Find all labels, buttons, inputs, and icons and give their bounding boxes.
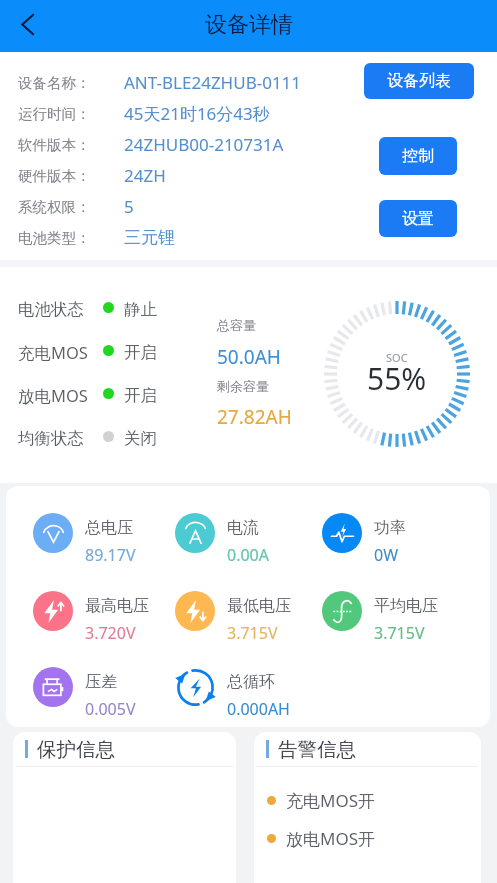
staticText: 总容量 — [217, 317, 256, 333]
button[interactable]: 设置 — [379, 200, 457, 237]
staticText: 总电压 — [85, 518, 133, 538]
staticText: 充电MOS开 — [286, 789, 376, 812]
staticText: 压差 — [85, 672, 117, 692]
button[interactable]: Back — [8, 5, 46, 43]
button[interactable]: 总电压 — [33, 513, 136, 561]
staticText: 告警信息 — [278, 737, 356, 762]
staticText: 控制 — [402, 146, 434, 166]
staticText: 电流 — [227, 518, 259, 538]
staticText: 最高电压 — [85, 596, 149, 616]
button[interactable]: 功率 — [322, 513, 406, 561]
button[interactable]: 设备列表 — [364, 63, 474, 99]
staticText: 放电MOS — [18, 384, 88, 407]
staticText: ANT-BLE24ZHUB-0111 — [124, 71, 302, 94]
staticText: 3.715V — [227, 622, 278, 644]
staticText: 充电MOS — [18, 341, 88, 364]
staticText: 软件版本： — [18, 136, 91, 154]
staticText: 0.000AH — [227, 698, 290, 720]
staticText: 89.17V — [85, 544, 136, 566]
staticText: 开启 — [124, 385, 157, 406]
button[interactable]: 控制 — [379, 137, 457, 175]
staticText: 0.00A — [227, 544, 269, 566]
staticText: 设备列表 — [387, 71, 451, 91]
staticText: 电池状态 — [18, 299, 84, 320]
staticText: 0.005V — [85, 698, 136, 720]
staticText: 50.0AH — [217, 344, 281, 370]
staticText: 总循环 — [227, 672, 275, 692]
button[interactable]: 总循环 — [175, 667, 290, 715]
staticText: 剩余容量 — [217, 378, 269, 394]
staticText: 放电MOS开 — [286, 827, 376, 850]
staticText: 24ZH — [124, 164, 166, 187]
staticText: SOC — [386, 350, 408, 365]
staticText: 均衡状态 — [18, 428, 84, 449]
staticText: 3.715V — [374, 622, 425, 644]
staticText: 最低电压 — [227, 596, 291, 616]
staticText: 三元锂 — [124, 227, 175, 248]
staticText: 保护信息 — [37, 737, 115, 762]
staticText: 设置 — [402, 209, 434, 229]
button[interactable]: 最低电压 — [175, 591, 291, 639]
staticText: 功率 — [374, 518, 406, 538]
staticText: 硬件版本： — [18, 167, 91, 185]
staticText: 运行时间： — [18, 105, 91, 123]
button[interactable]: 平均电压 — [322, 591, 438, 639]
staticText: 55% — [367, 358, 427, 399]
staticText: 静止 — [124, 299, 157, 320]
button[interactable]: 电流 — [175, 513, 269, 561]
staticText: 平均电压 — [374, 596, 438, 616]
staticText: 关闭 — [124, 428, 157, 449]
staticText: 设备名称： — [18, 74, 91, 92]
staticText: 0W — [374, 544, 399, 566]
button[interactable]: 最高电压 — [33, 591, 149, 639]
staticText: 3.720V — [85, 622, 136, 644]
staticText: 系统权限： — [18, 198, 91, 216]
staticText: 45天21时16分43秒 — [124, 102, 270, 125]
staticText: 24ZHUB00-210731A — [124, 133, 284, 156]
button[interactable]: 压差 — [33, 667, 136, 715]
staticText: 设备详情 — [205, 11, 293, 39]
staticText: 开启 — [124, 342, 157, 363]
staticText: 电池类型： — [18, 229, 91, 247]
staticText: 5 — [124, 195, 134, 218]
staticText: 27.82AH — [217, 404, 292, 430]
